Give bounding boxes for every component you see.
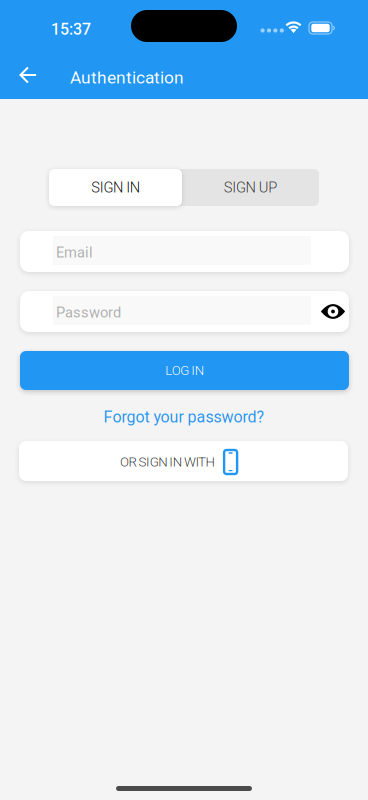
button[interactable]: Show password (312, 291, 354, 332)
staticText: 15:37 (51, 20, 91, 39)
staticText: Forgot your password? (103, 408, 264, 426)
staticText: OR SIGN IN WITH (120, 454, 215, 470)
button[interactable]: SIGN IN (49, 169, 182, 206)
staticText: SIGN UP (224, 179, 277, 196)
staticText: Email (56, 244, 93, 261)
button[interactable]: OR SIGN IN WITH (19, 441, 348, 481)
button[interactable]: Forgot your password? (84, 405, 284, 429)
button[interactable]: SIGN UP (182, 169, 319, 206)
button[interactable]: Back (7, 54, 51, 98)
staticText: Password (56, 304, 121, 321)
staticText: Authentication (70, 67, 184, 88)
staticText: SIGN IN (91, 179, 140, 196)
staticText: LOG IN (165, 363, 204, 378)
button[interactable]: LOG IN (20, 351, 349, 390)
